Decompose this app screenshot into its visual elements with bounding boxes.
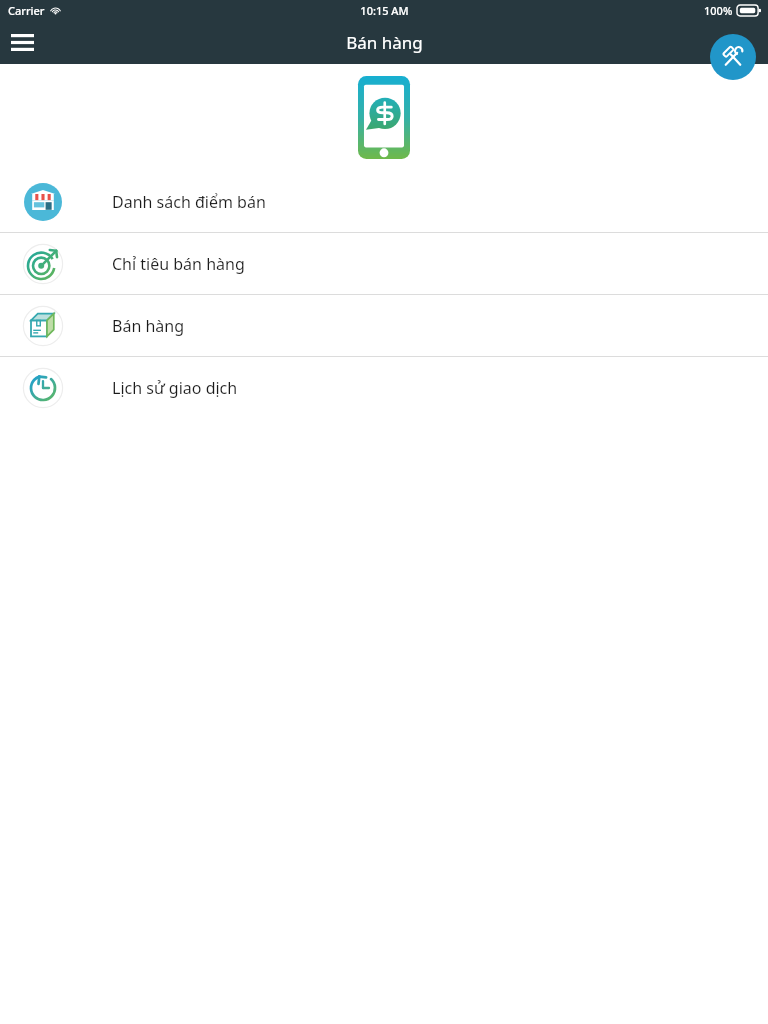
staticText: 100% [704, 3, 733, 18]
button[interactable]: Bán hàng [0, 295, 768, 356]
staticText: Carrier [8, 3, 45, 18]
staticText: Danh sách điểm bán [112, 191, 266, 213]
button[interactable]: Tools [710, 34, 756, 80]
staticText: Bán hàng [346, 31, 423, 54]
staticText: 10:15 AM [360, 3, 409, 18]
button[interactable]: Lịch sử giao dịch [0, 357, 768, 418]
staticText: Chỉ tiêu bán hàng [112, 253, 245, 275]
button[interactable]: Menu [0, 20, 44, 64]
staticText: Bán hàng [112, 315, 185, 337]
button[interactable]: Danh sách điểm bán [0, 171, 768, 232]
button[interactable]: Chỉ tiêu bán hàng [0, 233, 768, 294]
staticText: Lịch sử giao dịch [112, 377, 238, 399]
